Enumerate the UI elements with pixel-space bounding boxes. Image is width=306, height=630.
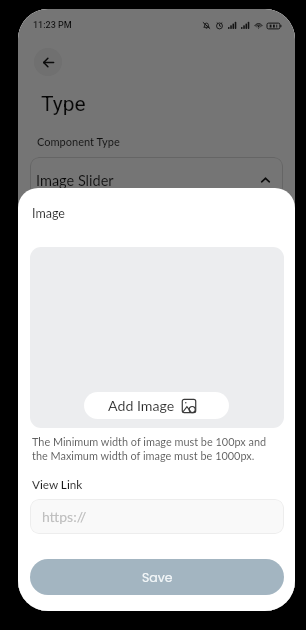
staticText: Image — [32, 206, 65, 221]
staticText: Save — [142, 569, 173, 586]
staticText: Add Image — [108, 397, 175, 414]
button[interactable]: Image Slider — [30, 157, 283, 203]
staticText: View Link — [32, 477, 83, 491]
button[interactable]: Save — [30, 559, 284, 595]
button[interactable]: Add Image — [84, 392, 229, 419]
staticText: Type — [41, 92, 86, 117]
button[interactable]: https:// — [30, 499, 284, 534]
staticText: https:// — [42, 508, 87, 525]
staticText: Component Type — [37, 135, 120, 148]
staticText: The Minimum width of image must be 100px… — [32, 435, 267, 463]
staticText: Image Slider — [36, 172, 114, 189]
staticText: 11:23 PM — [33, 20, 72, 31]
button[interactable]: Back — [34, 48, 62, 76]
